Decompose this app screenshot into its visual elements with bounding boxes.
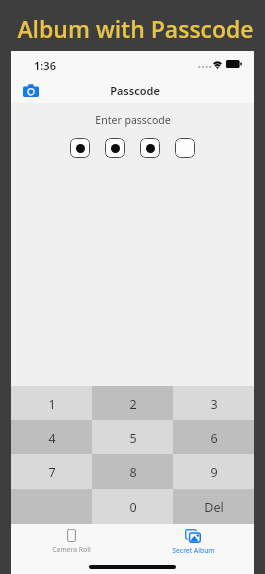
- staticText: Enter passcode: [95, 113, 171, 127]
- staticText: 9: [210, 464, 218, 481]
- button[interactable]: Empty digit: [175, 138, 195, 158]
- button[interactable]: 7: [11, 454, 92, 489]
- button[interactable]: 0: [92, 489, 173, 524]
- staticText: 5: [129, 430, 137, 447]
- staticText: 0: [129, 499, 137, 516]
- button[interactable]: 8: [92, 454, 173, 489]
- staticText: 7: [48, 464, 56, 481]
- staticText: 1:36: [34, 58, 56, 73]
- staticText: Album with Passcode: [17, 13, 254, 44]
- button[interactable]: 5: [92, 420, 173, 454]
- staticText: Camera Roll: [52, 545, 91, 554]
- button[interactable]: 6: [173, 420, 254, 454]
- staticText: 6: [210, 430, 218, 447]
- button[interactable]: 1: [11, 386, 92, 420]
- button[interactable]: Camera Roll: [11, 524, 132, 558]
- button[interactable]: Digit entered: [140, 138, 160, 158]
- button[interactable]: 9: [173, 454, 254, 489]
- staticText: Del: [204, 499, 224, 516]
- staticText: 1: [48, 396, 56, 413]
- button[interactable]: Secret Album: [132, 524, 254, 558]
- button[interactable]: 2: [92, 386, 173, 420]
- button[interactable]: 3: [173, 386, 254, 420]
- staticText: 2: [129, 396, 137, 413]
- button[interactable]: Camera: [19, 79, 43, 101]
- button[interactable]: Digit entered: [105, 138, 125, 158]
- button[interactable]: 4: [11, 420, 92, 454]
- staticText: 4: [48, 430, 56, 447]
- staticText: Secret Album: [172, 546, 215, 555]
- staticText: 8: [129, 464, 137, 481]
- button[interactable]: Digit entered: [70, 138, 90, 158]
- staticText: Passcode: [110, 83, 160, 98]
- staticText: 3: [210, 396, 218, 413]
- button[interactable]: Del: [173, 489, 254, 524]
